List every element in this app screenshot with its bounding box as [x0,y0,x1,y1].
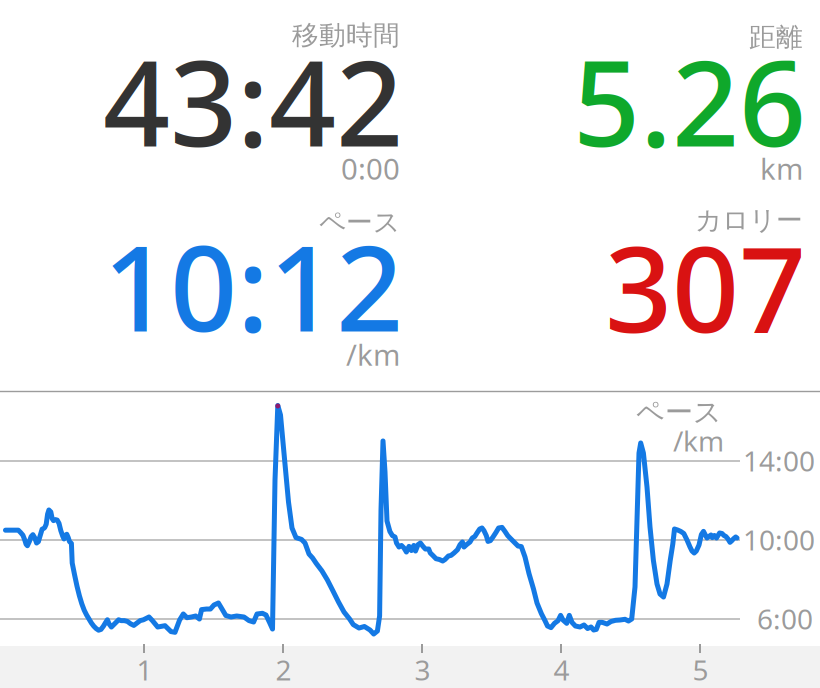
staticText: /km [346,335,400,374]
staticText: km [760,149,803,188]
button[interactable]: ペース [0,0,404,391]
staticText: カロリー [695,204,803,237]
button[interactable]: 距離 [0,0,807,391]
staticText: 5.26 [573,23,806,179]
button[interactable]: カロリー [0,0,807,391]
staticText: 6:00 [757,600,813,637]
staticText: 2 [275,651,291,688]
button[interactable]: 移動時間 [0,0,404,391]
staticText: 43:42 [103,23,403,179]
staticText: ペース [636,395,722,429]
staticText: 14:00 [743,442,815,479]
staticText: 4 [553,651,569,688]
staticText: 5 [692,651,708,688]
staticText: ペース [319,206,400,239]
staticText: /km [673,422,724,459]
staticText: 10:12 [103,208,403,364]
staticText: 3 [414,651,430,688]
staticText: 距離 [749,21,803,54]
staticText: 1 [136,651,152,688]
staticText: 移動時間 [292,19,400,52]
staticText: 307 [605,209,806,365]
staticText: 10:00 [743,521,815,558]
staticText: 0:00 [341,149,400,188]
